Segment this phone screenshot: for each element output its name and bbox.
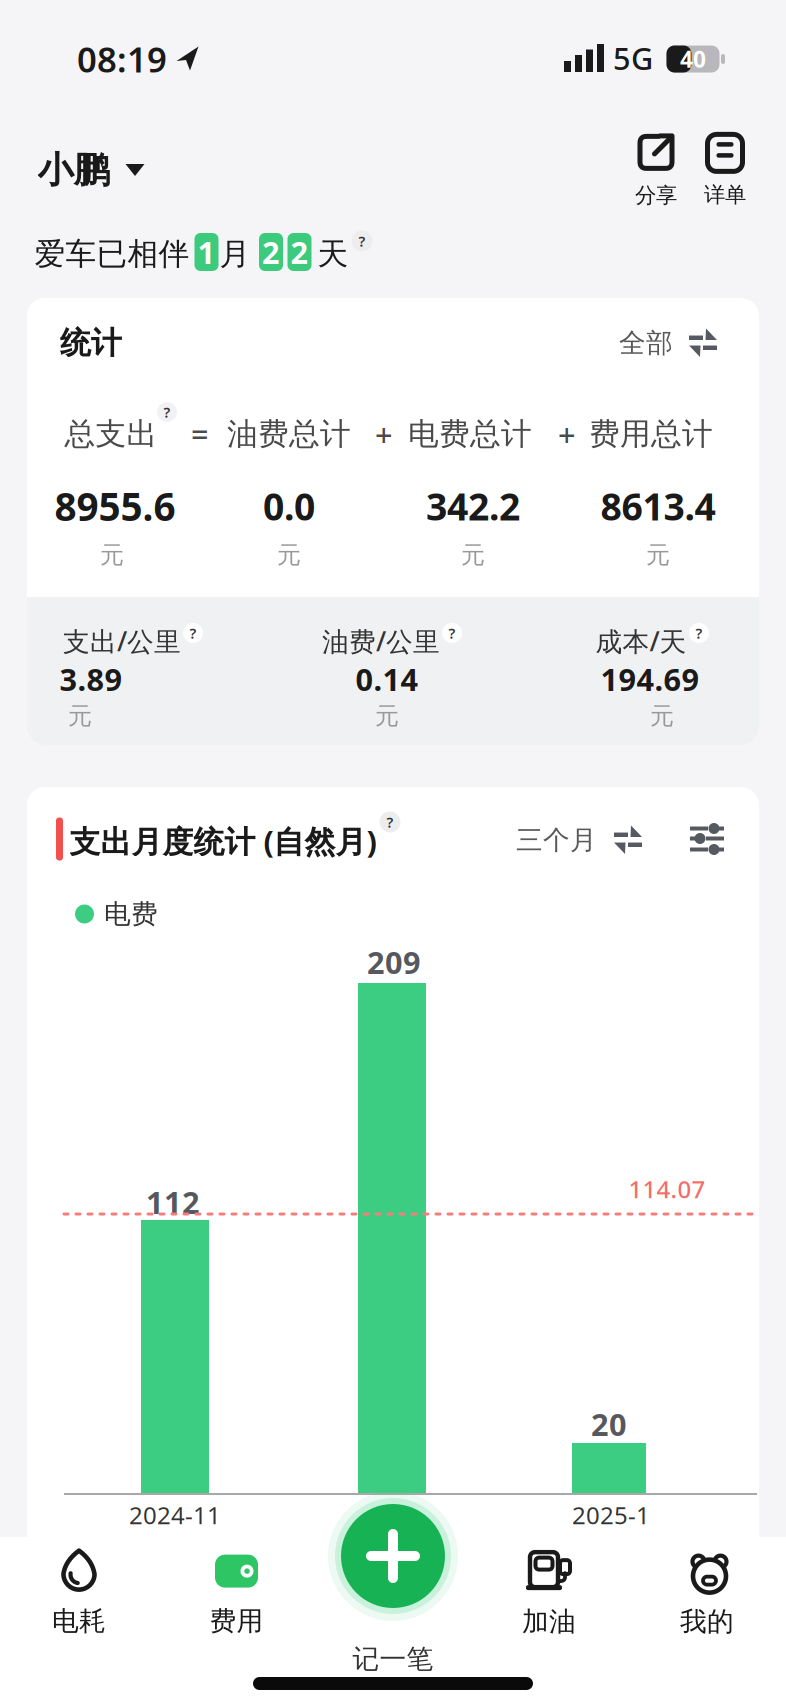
staticText: = xyxy=(191,414,209,454)
staticText: 小鹏 xyxy=(37,148,109,192)
staticText: 2 xyxy=(290,232,308,272)
staticText: 元 xyxy=(375,701,399,731)
staticText: 8955.6 xyxy=(54,480,175,532)
staticText: 分享 xyxy=(635,182,677,209)
staticText: 全部 xyxy=(619,327,673,359)
button[interactable]: 详单 xyxy=(704,134,746,208)
staticText: 月 xyxy=(219,235,250,273)
staticText: 元 xyxy=(100,540,124,570)
button[interactable]: 我的 xyxy=(680,1552,734,1638)
staticText: 加油 xyxy=(522,1605,576,1638)
staticText: 元 xyxy=(277,540,301,570)
staticText: ? xyxy=(189,623,196,643)
staticText: 费用总计 xyxy=(589,415,713,453)
button[interactable]: 电耗 xyxy=(52,1549,106,1637)
staticText: 342.2 xyxy=(426,481,520,531)
staticText: 114.07 xyxy=(628,1173,705,1205)
staticText: 统计 xyxy=(60,324,122,362)
staticText: 2025-1 xyxy=(572,1499,650,1531)
staticText: 2024-11 xyxy=(129,1499,221,1531)
staticText: 成本/天 xyxy=(595,623,686,659)
staticText: 0.0 xyxy=(263,481,315,531)
button[interactable]: 费用 xyxy=(209,1555,263,1637)
staticText: 8613.4 xyxy=(600,481,715,531)
staticText: 油费/公里 xyxy=(322,623,440,659)
staticText: 电费总计 xyxy=(408,415,532,453)
staticText: 记一笔 xyxy=(352,1643,433,1675)
staticText: 天 xyxy=(317,235,348,273)
button[interactable]: 分享 xyxy=(635,133,677,209)
staticText: 40 xyxy=(680,44,706,74)
staticText: ? xyxy=(163,402,170,422)
staticText: 112 xyxy=(146,1182,200,1222)
staticText: + xyxy=(375,414,393,454)
button[interactable]: 记一笔 xyxy=(329,1492,457,1620)
staticText: 20 xyxy=(591,1404,627,1444)
staticText: 194.69 xyxy=(600,659,699,699)
staticText: 我的 xyxy=(680,1605,734,1638)
staticText: 1 xyxy=(197,232,215,272)
staticText: 元 xyxy=(646,540,670,570)
staticText: 电耗 xyxy=(52,1605,106,1637)
staticText: 油费总计 xyxy=(227,415,351,453)
staticText: 2 xyxy=(262,232,280,272)
staticText: 电费 xyxy=(104,898,158,930)
staticText: ? xyxy=(695,623,702,643)
staticText: 5G xyxy=(613,38,653,78)
staticText: ? xyxy=(358,231,365,251)
staticText: 详单 xyxy=(704,182,746,208)
staticText: ? xyxy=(386,812,393,832)
staticText: + xyxy=(558,414,576,454)
staticText: 爱车已相伴 xyxy=(34,235,189,273)
staticText: 元 xyxy=(650,701,674,731)
staticText: 元 xyxy=(461,540,485,570)
staticText: 209 xyxy=(367,942,421,982)
staticText: ? xyxy=(448,623,455,643)
button[interactable]: 全部 xyxy=(619,327,717,359)
staticText: 支出月度统计 (自然月) xyxy=(69,821,376,861)
staticText: 三个月 xyxy=(516,824,597,856)
button[interactable]: 三个月 xyxy=(516,824,642,856)
staticText: 总支出 xyxy=(64,415,157,453)
staticText: 支出/公里 xyxy=(63,623,181,659)
staticText: 元 xyxy=(68,701,92,731)
staticText: 3.89 xyxy=(59,659,122,699)
button[interactable]: 加油 xyxy=(522,1552,576,1638)
staticText: 费用 xyxy=(209,1605,263,1637)
button[interactable]: 小鹏 xyxy=(37,148,144,192)
staticText: 08:19 xyxy=(77,36,167,82)
button[interactable]: 筛选 xyxy=(690,822,724,855)
staticText: 0.14 xyxy=(355,659,418,699)
